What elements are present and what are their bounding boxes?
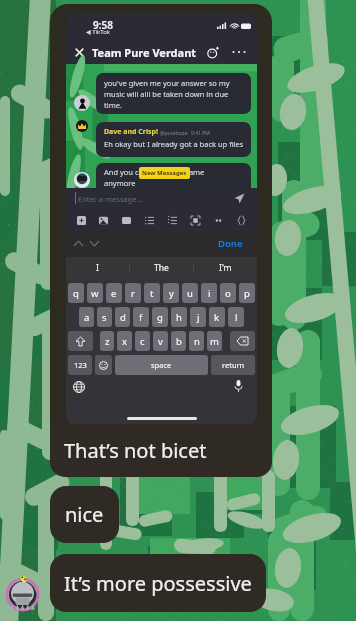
button[interactable]: Shift bbox=[68, 331, 93, 351]
button[interactable]: bullet bbox=[138, 209, 161, 231]
button[interactable]: return bbox=[211, 355, 255, 375]
button[interactable]: f bbox=[133, 307, 149, 327]
button[interactable]: That’s not bicet bbox=[50, 424, 272, 477]
staticText: n bbox=[194, 335, 200, 348]
button[interactable]: y bbox=[163, 283, 179, 303]
staticText: return bbox=[222, 360, 245, 370]
button[interactable]: Done bbox=[218, 237, 243, 250]
staticText: I'm bbox=[219, 262, 232, 274]
staticText: t bbox=[150, 287, 154, 300]
staticText: Done bbox=[218, 237, 243, 250]
staticText: i bbox=[208, 287, 211, 300]
staticText: you've given me your answer so my music … bbox=[104, 78, 244, 110]
button[interactable]: gif bbox=[115, 209, 138, 231]
button[interactable]: Close bbox=[74, 47, 85, 58]
staticText: ◀ TikTok bbox=[86, 28, 111, 36]
staticText: 9:41 PM bbox=[191, 130, 210, 137]
staticText: space bbox=[151, 360, 172, 370]
staticText: The bbox=[154, 262, 169, 274]
button[interactable]: l bbox=[228, 307, 244, 327]
staticText: 9:58 bbox=[93, 18, 113, 32]
button[interactable]: s bbox=[97, 307, 112, 327]
staticText: That’s not bicet bbox=[64, 437, 207, 464]
button[interactable]: Add reaction bbox=[207, 46, 220, 59]
staticText: Enter a message... bbox=[78, 194, 143, 204]
button[interactable]: Previous bbox=[74, 241, 83, 246]
staticText: y bbox=[169, 287, 174, 300]
staticText: @purehope bbox=[160, 130, 188, 137]
button[interactable]: b bbox=[171, 331, 186, 351]
button[interactable]: Dictate bbox=[234, 380, 243, 392]
staticText: h bbox=[176, 311, 182, 324]
staticText: j bbox=[197, 311, 200, 324]
button[interactable]: Profile bbox=[4, 566, 44, 606]
staticText: nice bbox=[65, 501, 104, 528]
button[interactable]: It’s more possessive bbox=[50, 554, 266, 612]
button[interactable]: Send bbox=[234, 193, 245, 204]
staticText: And you can't take the game anymore bbox=[104, 167, 222, 188]
staticText: z bbox=[105, 335, 110, 348]
button[interactable]: u bbox=[182, 283, 198, 303]
button[interactable]: r bbox=[125, 283, 141, 303]
button[interactable]: Next bbox=[90, 241, 99, 246]
staticText: a bbox=[84, 311, 90, 324]
button[interactable]: g bbox=[152, 307, 168, 327]
button[interactable]: plus bbox=[70, 209, 92, 231]
button[interactable]: x bbox=[117, 331, 132, 351]
button[interactable]: e bbox=[106, 283, 122, 303]
staticText: v bbox=[158, 335, 163, 348]
staticText: e bbox=[111, 287, 117, 300]
staticText: p bbox=[244, 287, 250, 300]
button[interactable]: w bbox=[87, 283, 103, 303]
button[interactable]: v bbox=[153, 331, 168, 351]
button[interactable]: i bbox=[201, 283, 217, 303]
staticText: New Messages bbox=[142, 169, 187, 177]
button[interactable]: n bbox=[189, 331, 204, 351]
button[interactable]: m bbox=[207, 331, 222, 351]
button[interactable]: d bbox=[115, 307, 130, 327]
staticText: l bbox=[235, 311, 238, 324]
staticText: x bbox=[122, 335, 128, 348]
staticText: Dave and Crisp! bbox=[104, 127, 158, 137]
button[interactable]: numlist bbox=[161, 209, 184, 231]
staticText: r bbox=[131, 287, 135, 300]
button[interactable]: q bbox=[68, 283, 84, 303]
staticText: k bbox=[214, 311, 220, 324]
staticText: u bbox=[187, 287, 193, 300]
button[interactable]: o bbox=[220, 283, 236, 303]
button[interactable]: scan bbox=[184, 209, 207, 231]
staticText: Team Pure Verdant bbox=[92, 45, 197, 60]
button[interactable]: More options bbox=[232, 50, 247, 54]
staticText: 123 bbox=[74, 360, 87, 370]
button[interactable]: p bbox=[239, 283, 255, 303]
staticText: It’s more possessive bbox=[64, 570, 252, 597]
button[interactable]: 123 bbox=[68, 355, 92, 375]
button[interactable]: h bbox=[171, 307, 187, 327]
staticText: f bbox=[139, 311, 143, 324]
button[interactable]: k bbox=[209, 307, 225, 327]
staticText: w bbox=[91, 287, 99, 300]
button[interactable]: The bbox=[130, 257, 193, 279]
button[interactable]: space bbox=[115, 355, 208, 375]
button[interactable]: a bbox=[79, 307, 94, 327]
staticText: I bbox=[96, 262, 99, 274]
button[interactable]: I'm bbox=[194, 257, 257, 279]
button[interactable]: eyes bbox=[207, 209, 230, 231]
button[interactable]: t bbox=[144, 283, 160, 303]
staticText: o bbox=[225, 287, 231, 300]
staticText: c bbox=[140, 335, 145, 348]
button[interactable]: j bbox=[190, 307, 206, 327]
button[interactable]: c bbox=[135, 331, 150, 351]
staticText: Eh okay but I already got a back up file… bbox=[104, 139, 244, 149]
staticText: m bbox=[210, 335, 219, 348]
staticText: b bbox=[176, 335, 182, 348]
button[interactable]: z bbox=[100, 331, 114, 351]
button[interactable]: code bbox=[230, 209, 253, 231]
staticText: g bbox=[157, 311, 163, 324]
button[interactable]: Backspace bbox=[230, 331, 255, 351]
button[interactable]: nice bbox=[50, 486, 119, 543]
button[interactable]: I bbox=[66, 257, 129, 279]
button[interactable]: Emoji bbox=[95, 355, 112, 375]
button[interactable]: image bbox=[92, 209, 115, 231]
button[interactable]: Change keyboard bbox=[73, 381, 85, 393]
